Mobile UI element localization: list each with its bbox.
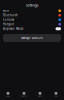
staticText: Alerts (38, 95, 42, 97)
button[interactable]: Home (0, 92, 16, 97)
staticText: Settings (25, 2, 38, 8)
button[interactable]: Manage Account (3, 34, 61, 42)
staticText: Bluetooth (3, 13, 18, 17)
staticText: Cellular (3, 18, 14, 21)
staticText: Hotspot (3, 22, 14, 26)
staticText: You (54, 95, 57, 97)
staticText: Home (6, 95, 10, 97)
button[interactable]: Search (16, 92, 32, 97)
staticText: Airplane Mode (3, 27, 24, 30)
button[interactable]: Alerts (32, 92, 48, 97)
staticText: Search (21, 95, 27, 97)
staticText: Manage Account (21, 36, 43, 40)
button[interactable]: You (48, 92, 64, 97)
staticText: Wi-Fi (3, 9, 9, 12)
